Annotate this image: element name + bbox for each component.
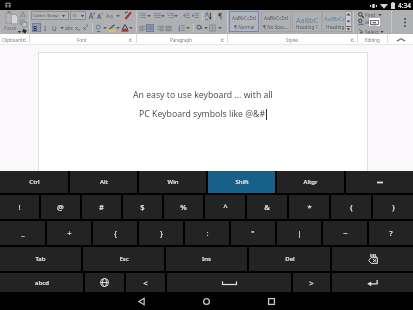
button[interactable]: ! bbox=[0, 195, 39, 219]
button[interactable]: Keyboard bbox=[369, 18, 380, 26]
button[interactable]: Esc bbox=[83, 247, 164, 271]
button[interactable]: Shading bbox=[196, 24, 203, 32]
button[interactable]: Editing bbox=[357, 34, 387, 45]
button[interactable]: Scroll up bbox=[345, 11, 352, 18]
button[interactable]: Align center bbox=[146, 24, 154, 32]
button[interactable]: Bullets bbox=[139, 12, 146, 19]
button[interactable]: Paragraph bbox=[136, 34, 227, 45]
button[interactable]: More bbox=[147, 12, 151, 20]
button[interactable]: Borders bbox=[209, 24, 216, 32]
button[interactable]: Sort bbox=[205, 12, 212, 20]
button[interactable]: Text effects bbox=[95, 24, 103, 32]
button[interactable]: + bbox=[47, 221, 91, 245]
button[interactable]: Collapse ribbon bbox=[387, 34, 413, 45]
button[interactable]: More options bbox=[396, 11, 413, 33]
button[interactable]: Find bbox=[358, 11, 384, 17]
button[interactable]: More bbox=[60, 24, 64, 32]
staticText: x₂ bbox=[75, 24, 81, 32]
button[interactable]: Styles bbox=[227, 34, 357, 45]
button[interactable]: Grow font bbox=[88, 11, 95, 20]
button[interactable]: More bbox=[218, 24, 222, 32]
button[interactable]: @ bbox=[41, 195, 80, 219]
button[interactable]: Bold bbox=[32, 23, 41, 32]
button[interactable]: More bbox=[161, 12, 165, 20]
button[interactable]: Replace bbox=[358, 18, 384, 25]
button[interactable]: Cut bbox=[20, 11, 26, 17]
button[interactable]: ^ bbox=[205, 195, 245, 219]
button[interactable]: Clipboard bbox=[0, 34, 29, 45]
button[interactable]: Backspace bbox=[332, 247, 413, 271]
button[interactable]: Ctrl bbox=[0, 171, 68, 193]
button[interactable]: $ bbox=[123, 195, 162, 219]
button[interactable]: Recent apps bbox=[256, 292, 286, 310]
button[interactable]: { bbox=[93, 221, 137, 245]
button[interactable]: " bbox=[231, 221, 275, 245]
button[interactable]: Copy bbox=[20, 20, 27, 27]
button[interactable]: More bbox=[116, 12, 120, 20]
button[interactable]: More styles bbox=[345, 25, 352, 32]
button[interactable]: Font bbox=[29, 34, 135, 45]
button[interactable]: Shrink font bbox=[96, 11, 103, 20]
button[interactable]: Paste bbox=[3, 11, 19, 33]
button[interactable]: More bbox=[116, 24, 120, 32]
button[interactable]: AaBbCcDd bbox=[229, 11, 259, 32]
button[interactable]: Justify bbox=[165, 25, 172, 32]
button[interactable]: Enter bbox=[332, 273, 413, 292]
button[interactable]: More bbox=[103, 24, 107, 32]
button[interactable]: More bbox=[174, 12, 178, 20]
button[interactable]: More bbox=[204, 24, 208, 32]
staticText: 4:34 bbox=[398, 1, 411, 10]
button[interactable]: % bbox=[164, 195, 203, 219]
button[interactable]: Del bbox=[249, 247, 330, 271]
button[interactable]: Ins bbox=[166, 247, 247, 271]
button[interactable]: ( bbox=[331, 195, 371, 219]
button[interactable]: Scroll down bbox=[345, 18, 352, 25]
staticText: { bbox=[114, 228, 117, 238]
button[interactable]: Clear formatting bbox=[124, 11, 132, 20]
button[interactable]: Numbering bbox=[154, 12, 161, 19]
button[interactable]: AaBbCcDd bbox=[261, 11, 291, 32]
button[interactable]: Increase indent bbox=[192, 12, 199, 19]
button[interactable]: & bbox=[247, 195, 287, 219]
button[interactable]: Format painter bbox=[20, 28, 27, 35]
button[interactable]: Alt bbox=[70, 171, 137, 193]
button[interactable]: Align left bbox=[139, 25, 146, 32]
button[interactable]: Decrease indent bbox=[183, 12, 190, 19]
button[interactable]: More bbox=[129, 24, 133, 32]
button[interactable]: Multilevel list bbox=[167, 12, 174, 19]
button[interactable]: AaBbCcD bbox=[322, 11, 352, 32]
button[interactable]: Select bbox=[358, 28, 384, 34]
button[interactable]: ) bbox=[373, 195, 413, 219]
staticText: 10 bbox=[72, 13, 77, 19]
button[interactable]: * bbox=[289, 195, 329, 219]
button[interactable]: Back bbox=[126, 292, 156, 310]
button[interactable]: ? bbox=[369, 221, 413, 245]
button[interactable]: Hide keyboard bbox=[346, 171, 413, 193]
button[interactable]: Calibri (Body) bbox=[31, 11, 69, 20]
button[interactable]: _ bbox=[0, 221, 45, 245]
staticText: B bbox=[33, 24, 38, 33]
button[interactable]: : bbox=[185, 221, 229, 245]
button[interactable]: Altgr bbox=[277, 171, 344, 193]
button[interactable]: Font color bbox=[121, 24, 129, 32]
button[interactable]: More bbox=[186, 24, 190, 32]
button[interactable]: | bbox=[277, 221, 321, 245]
button[interactable]: Home bbox=[191, 292, 221, 310]
button[interactable]: Tab bbox=[0, 247, 81, 271]
button[interactable]: 10 bbox=[70, 11, 86, 20]
button[interactable]: AaBbC bbox=[292, 11, 322, 32]
button[interactable]: # bbox=[82, 195, 121, 219]
button[interactable]: < bbox=[126, 273, 165, 292]
button[interactable]: Text highlight bbox=[108, 24, 116, 32]
button[interactable]: > bbox=[293, 273, 330, 292]
button[interactable]: Align right bbox=[157, 25, 164, 32]
button[interactable]: Change language bbox=[85, 273, 124, 292]
button[interactable]: Win bbox=[139, 171, 206, 193]
button[interactable]: Line spacing bbox=[178, 24, 185, 32]
button[interactable]: ~ bbox=[323, 221, 367, 245]
button[interactable]: Shift bbox=[208, 171, 275, 193]
button[interactable]: Paste options bbox=[17, 30, 22, 34]
button[interactable]: abcd bbox=[0, 273, 83, 292]
button[interactable]: } bbox=[139, 221, 183, 245]
button[interactable]: Space bbox=[167, 273, 291, 292]
